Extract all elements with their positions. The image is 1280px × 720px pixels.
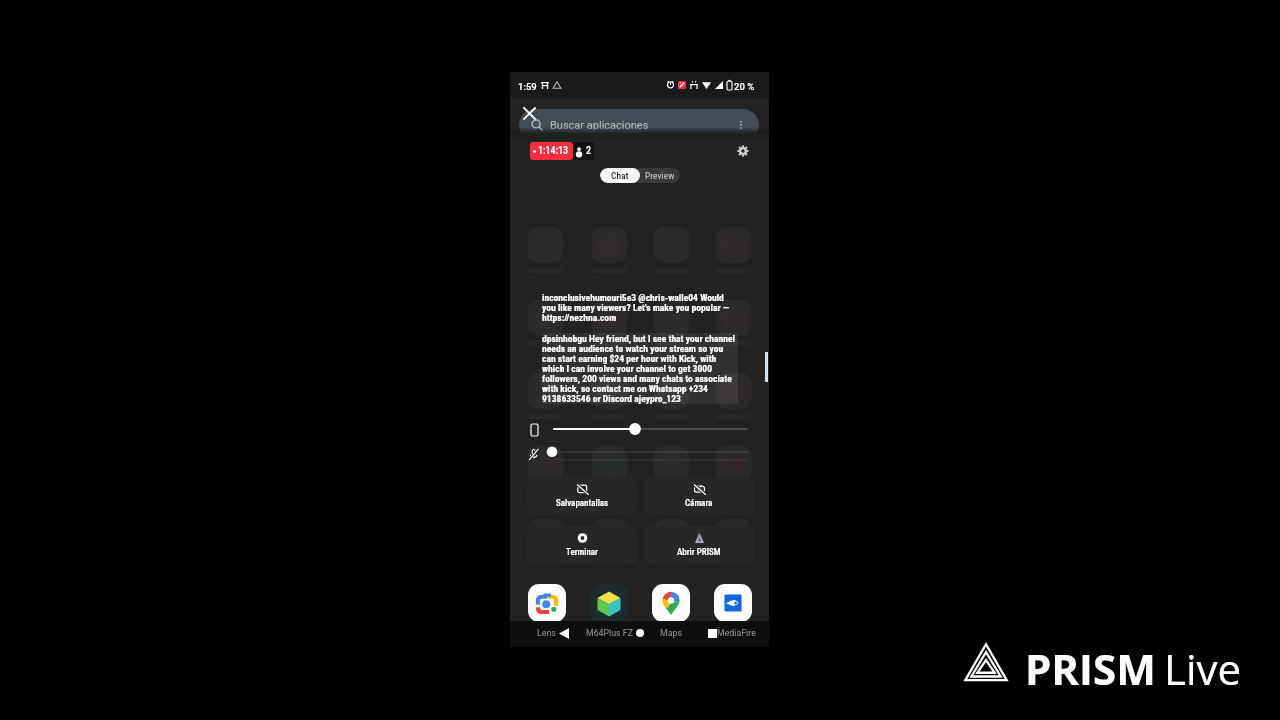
button[interactable]: Buscar aplicaciones xyxy=(519,109,759,141)
staticText: Cámara xyxy=(685,498,713,509)
staticText: Lens xyxy=(537,628,556,638)
staticText: PRISM xyxy=(1025,640,1156,688)
staticText: Chat xyxy=(611,170,629,181)
staticText: Abrir PRISM xyxy=(677,547,721,558)
button[interactable]: Preview xyxy=(640,168,680,183)
button[interactable]: Abrir PRISM xyxy=(644,526,754,564)
button[interactable]: Terminar xyxy=(527,526,637,564)
staticText: dpsinhobgu Hey friend, but I see that yo… xyxy=(542,333,738,404)
button[interactable]: 1:14:13 xyxy=(530,142,573,160)
staticText: Maps xyxy=(660,628,682,638)
button[interactable]: Settings xyxy=(735,143,751,159)
button[interactable]: Close xyxy=(518,102,540,124)
staticText: 1:14:13 xyxy=(538,145,569,157)
staticText: 1:59 xyxy=(518,81,537,92)
staticText: Terminar xyxy=(566,547,598,558)
staticText: Buscar aplicaciones xyxy=(550,119,649,132)
button[interactable]: Chat xyxy=(600,168,640,183)
staticText: Salvapantallas xyxy=(556,498,609,509)
staticText: inconclusivehumouri5e3 @chris-walle04 Wo… xyxy=(542,292,738,323)
button[interactable]: MediaFire xyxy=(714,584,752,622)
button[interactable]: Recents xyxy=(704,625,720,641)
staticText: MediaFire xyxy=(717,628,756,638)
staticText: 2 xyxy=(586,145,591,157)
staticText: Live xyxy=(1164,640,1242,688)
button[interactable]: Salvapantallas xyxy=(527,477,637,515)
button[interactable]: Maps xyxy=(652,584,690,622)
staticText: M64Plus FZ xyxy=(586,628,633,638)
button[interactable]: Cámara xyxy=(644,477,754,515)
button[interactable]: M64Plus FZ xyxy=(590,584,628,622)
button[interactable]: Lens xyxy=(528,584,566,622)
button[interactable]: Back xyxy=(556,625,572,641)
button[interactable]: Home xyxy=(632,625,648,641)
staticText: Preview xyxy=(645,170,675,181)
staticText: 20 % xyxy=(734,81,755,92)
